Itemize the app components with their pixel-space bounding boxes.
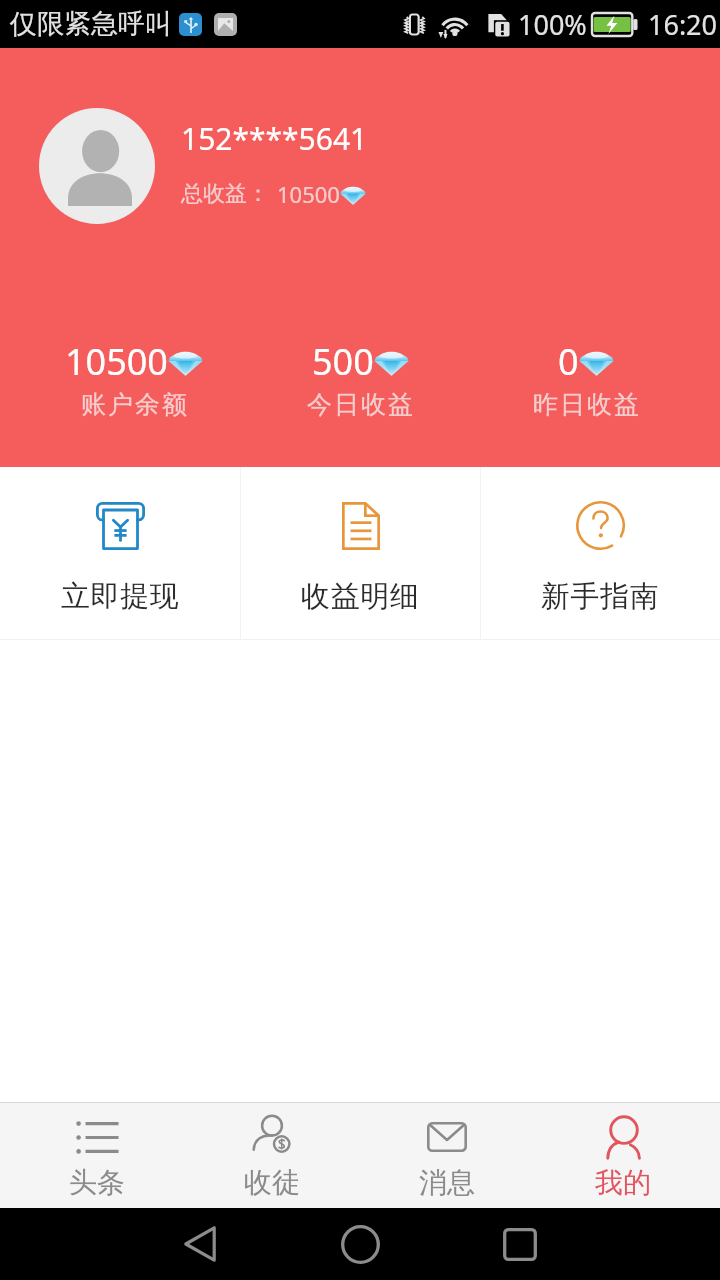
button[interactable]: 消息 bbox=[359, 1103, 535, 1200]
staticText: 新手指南 bbox=[541, 578, 660, 615]
staticText: 152****5641 bbox=[181, 118, 368, 159]
staticText: 0 bbox=[558, 337, 579, 386]
button[interactable]: Recent apps bbox=[488, 1212, 552, 1276]
button[interactable]: 我的 bbox=[535, 1103, 711, 1200]
staticText: 头条 bbox=[69, 1165, 125, 1200]
button[interactable]: 收益明细 bbox=[241, 467, 480, 615]
staticText: 500 bbox=[312, 337, 374, 386]
staticText: 10500 bbox=[65, 337, 168, 386]
staticText: 昨日收益 bbox=[532, 389, 640, 420]
button[interactable]: 立即提现 bbox=[0, 467, 240, 615]
staticText: 收益明细 bbox=[301, 578, 420, 615]
staticText: 账户余额 bbox=[80, 389, 188, 420]
button[interactable]: 新手指南 bbox=[481, 467, 720, 615]
button[interactable]: Back bbox=[168, 1212, 232, 1276]
staticText: 收徒 bbox=[244, 1165, 300, 1200]
staticText: 我的 bbox=[595, 1165, 651, 1200]
staticText: 16:20 bbox=[648, 6, 718, 43]
staticText: 100% bbox=[518, 6, 587, 43]
button[interactable]: 收徒 bbox=[184, 1103, 359, 1200]
staticText: 立即提现 bbox=[61, 578, 180, 615]
staticText: 消息 bbox=[419, 1165, 475, 1200]
staticText: 仅限紧急呼叫 bbox=[10, 7, 172, 41]
staticText: 总收益： bbox=[181, 180, 269, 208]
button[interactable]: Home bbox=[328, 1212, 392, 1276]
button[interactable]: 头条 bbox=[9, 1103, 184, 1200]
staticText: 今日收益 bbox=[306, 389, 414, 420]
staticText: 10500 bbox=[277, 179, 340, 209]
